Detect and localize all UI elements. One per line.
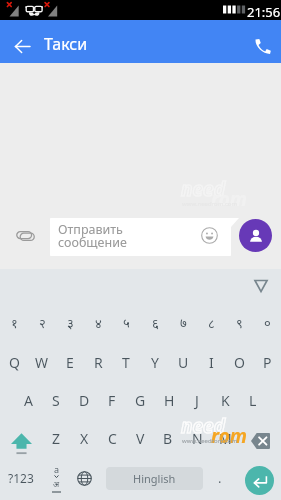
staticText: Q [9, 353, 20, 372]
button[interactable]: U [169, 343, 197, 381]
staticText: Такси [44, 33, 88, 55]
button[interactable]: Q [0, 343, 28, 381]
staticText: L [249, 391, 257, 410]
staticText: J [195, 391, 199, 410]
button[interactable]: Contact [239, 219, 272, 252]
button[interactable]: ८ [197, 304, 225, 342]
button[interactable]: V [126, 419, 154, 457]
button[interactable]: Call [248, 31, 277, 60]
button[interactable]: B [154, 419, 182, 457]
button[interactable]: X [70, 419, 98, 457]
staticText: ५ [123, 314, 130, 332]
button[interactable]: L [239, 381, 267, 419]
staticText: U [178, 353, 189, 372]
button[interactable]: I [197, 343, 225, 381]
button[interactable]: ९ [225, 304, 253, 342]
staticText: १ [11, 314, 18, 332]
button[interactable]: Отправить сообщение [50, 218, 231, 255]
staticText: W [35, 353, 49, 372]
staticText: www.needrom.com [182, 437, 238, 445]
staticText: V [136, 429, 145, 448]
button[interactable]: T [112, 343, 140, 381]
button[interactable]: २ [28, 304, 56, 342]
staticText: need [181, 413, 225, 439]
staticText: S [52, 391, 60, 410]
button[interactable]: Y [141, 343, 169, 381]
button[interactable]: W [28, 343, 56, 381]
staticText: D [79, 391, 90, 410]
button[interactable]: ० [253, 304, 281, 342]
staticText: M [219, 429, 232, 448]
staticText: ३ [67, 314, 74, 332]
staticText: I [209, 353, 214, 372]
button[interactable]: ७ [169, 304, 197, 342]
staticText: H [164, 391, 175, 410]
button[interactable]: Z [42, 419, 70, 457]
staticText: अ [53, 478, 60, 489]
staticText: 21:56 [247, 3, 281, 21]
staticText: Y [151, 353, 159, 372]
staticText: Отправить сообщение [58, 221, 127, 251]
staticText: २ [39, 314, 46, 332]
staticText: O [234, 353, 245, 372]
button[interactable]: ६ [141, 304, 169, 342]
button[interactable]: S [42, 381, 70, 419]
staticText: T [122, 353, 130, 372]
button[interactable]: १ [0, 304, 28, 342]
button[interactable]: Emoji [200, 226, 219, 245]
staticText: B [163, 429, 173, 448]
button[interactable]: F [98, 381, 126, 419]
button[interactable]: ३ [56, 304, 84, 342]
button[interactable]: K [211, 381, 239, 419]
staticText: K [221, 391, 230, 410]
button[interactable]: ५ [112, 304, 140, 342]
button[interactable]: E [56, 343, 84, 381]
button[interactable]: Change language [71, 459, 97, 497]
staticText: E [66, 353, 74, 372]
button[interactable]: J [183, 381, 211, 419]
staticText: a [54, 463, 60, 475]
staticText: Z [52, 429, 61, 448]
button[interactable]: Hinglish [106, 467, 203, 490]
button[interactable]: Enter [245, 466, 274, 495]
staticText: F [108, 391, 116, 410]
staticText: X [80, 429, 89, 448]
button[interactable]: Switch script [43, 459, 69, 497]
button[interactable]: Hide keyboard [249, 273, 273, 297]
staticText: Hinglish [133, 471, 176, 486]
button[interactable]: G [126, 381, 154, 419]
button[interactable]: Back [8, 32, 37, 61]
button[interactable]: A [14, 381, 42, 419]
staticText: ?123 [8, 470, 34, 486]
staticText: A [24, 391, 33, 410]
staticText: ६ [152, 314, 159, 332]
staticText: ४ [95, 314, 102, 332]
button[interactable]: Shift [0, 424, 42, 462]
button[interactable]: N [183, 419, 211, 457]
button[interactable]: M [211, 419, 239, 457]
staticText: rom [211, 423, 247, 449]
staticText: P [263, 353, 272, 372]
button[interactable]: R [84, 343, 112, 381]
button[interactable]: Attach file [10, 220, 41, 251]
button[interactable]: D [70, 381, 98, 419]
button[interactable]: C [98, 419, 126, 457]
staticText: N [192, 429, 203, 448]
staticText: ७ [180, 314, 187, 332]
staticText: C [108, 429, 117, 448]
staticText: ९ [236, 314, 243, 332]
staticText: . [218, 469, 222, 487]
button[interactable]: H [155, 381, 183, 419]
button[interactable]: ४ [84, 304, 112, 342]
staticText: ० [264, 314, 271, 332]
staticText: R [94, 353, 103, 372]
button[interactable]: Backspace [239, 422, 281, 460]
button[interactable]: ?123 [0, 459, 42, 497]
button[interactable]: . [206, 459, 234, 497]
button[interactable]: P [253, 343, 281, 381]
button[interactable]: O [225, 343, 253, 381]
staticText: G [135, 391, 146, 410]
